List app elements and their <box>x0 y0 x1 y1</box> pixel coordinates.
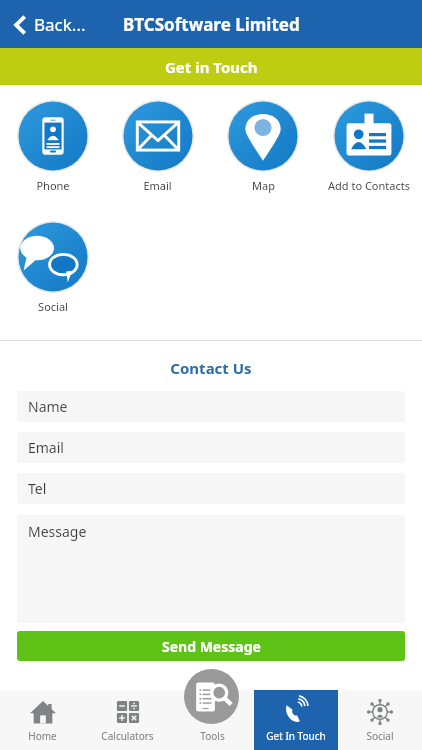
button[interactable]: Email <box>105 100 210 193</box>
button[interactable]: Phone <box>0 100 105 193</box>
button[interactable]: Map <box>210 100 316 193</box>
staticText: Back... <box>34 13 86 36</box>
button[interactable]: Add to Contacts <box>316 100 422 193</box>
staticText: Name <box>28 397 68 416</box>
button[interactable]: Send Message <box>17 631 405 661</box>
button[interactable]: Social <box>338 690 422 750</box>
button[interactable]: Social <box>0 221 105 314</box>
button[interactable]: Tel <box>17 473 405 504</box>
staticText: Send Message <box>162 637 261 656</box>
button[interactable]: Tools <box>184 669 239 724</box>
staticText: Calculators <box>101 729 154 743</box>
button[interactable]: Calculators <box>85 690 170 750</box>
button[interactable]: Tools <box>170 690 254 750</box>
staticText: Social <box>366 729 394 743</box>
staticText: Email <box>28 438 64 457</box>
button[interactable]: Get In Touch <box>254 690 338 750</box>
staticText: Phone <box>36 178 70 193</box>
staticText: Tel <box>28 479 47 498</box>
staticText: Home <box>28 729 57 743</box>
staticText: BTCSoftware Limited <box>123 13 300 36</box>
button[interactable]: Home <box>0 690 85 750</box>
staticText: Get in Touch <box>165 57 258 77</box>
button[interactable]: Email <box>17 432 405 463</box>
staticText: Get In Touch <box>266 729 326 743</box>
staticText: Map <box>252 178 275 193</box>
staticText: Message <box>28 522 87 541</box>
staticText: Add to Contacts <box>328 178 410 193</box>
staticText: Contact Us <box>0 358 422 378</box>
button[interactable]: Name <box>17 391 405 422</box>
staticText: Tools <box>200 729 225 743</box>
button[interactable]: Back... <box>10 7 90 42</box>
staticText: Email <box>143 178 172 193</box>
button[interactable]: Message <box>17 515 405 623</box>
staticText: Social <box>38 299 68 314</box>
